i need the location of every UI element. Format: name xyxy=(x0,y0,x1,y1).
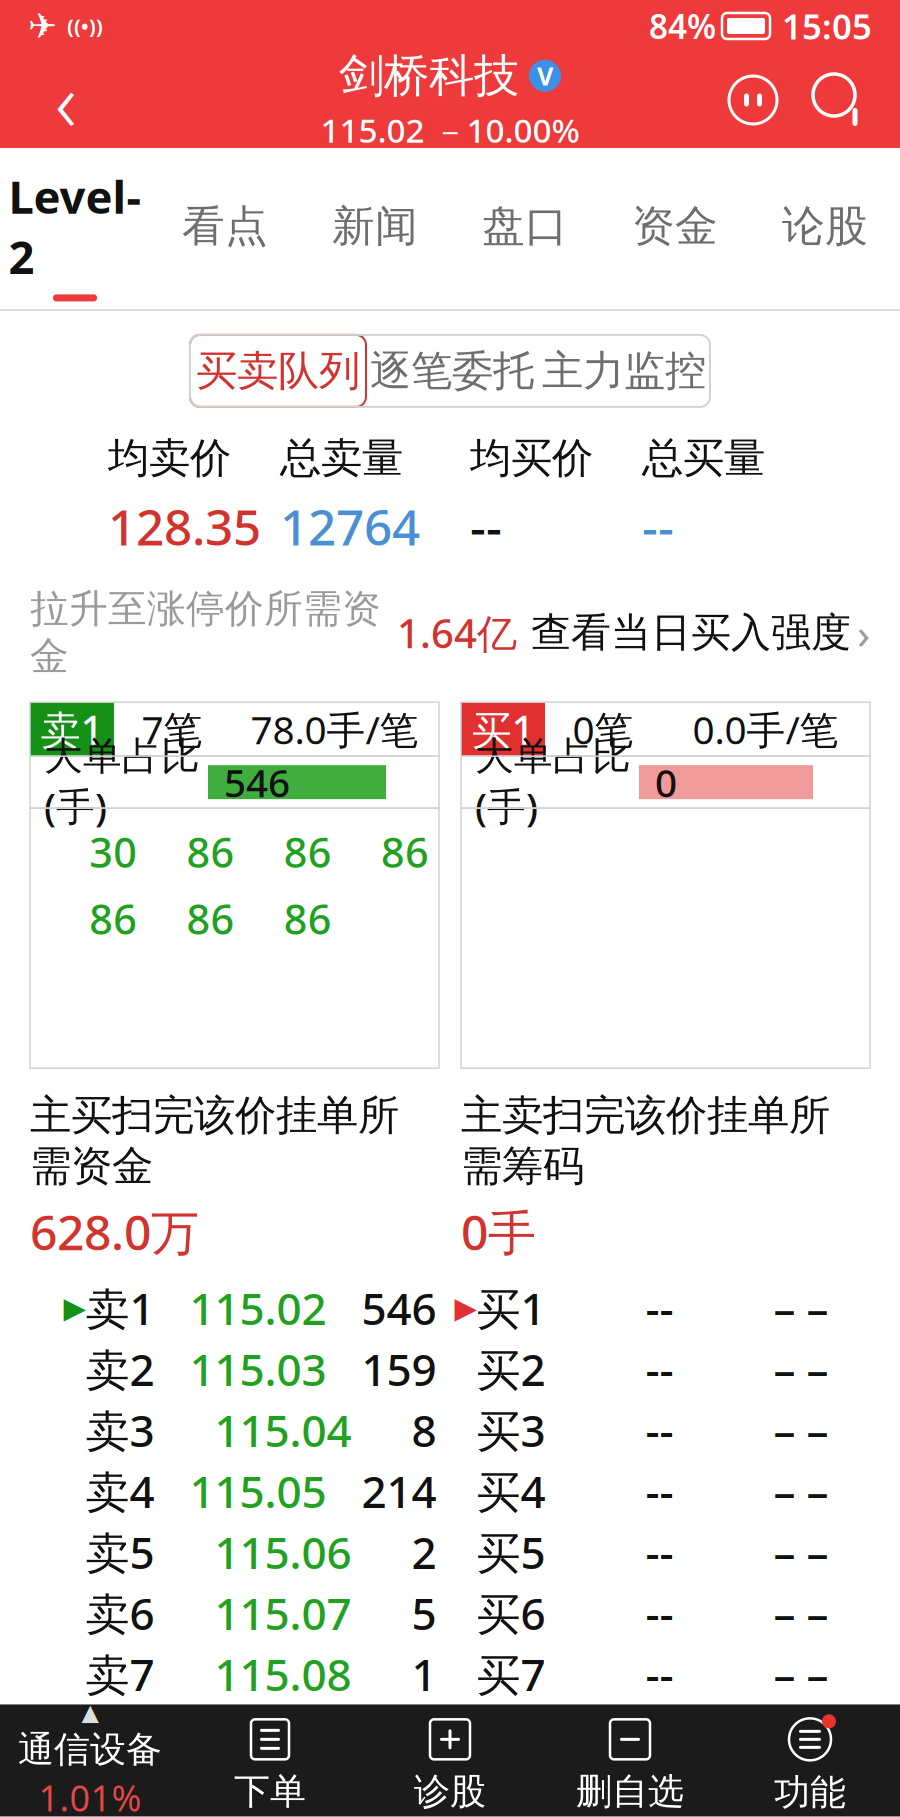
staticText: 7笔 xyxy=(141,703,202,755)
staticText: 86 xyxy=(186,824,234,879)
staticText: 买4 xyxy=(476,1462,545,1520)
staticText: 总卖量 xyxy=(280,433,403,484)
staticText: 0 xyxy=(655,756,677,808)
staticText: 通信设备 xyxy=(18,1727,162,1771)
staticText: -- xyxy=(645,1462,673,1520)
button[interactable]: Back xyxy=(18,57,114,143)
staticText: 查看当日买入强度 xyxy=(531,608,851,657)
staticText: 86 xyxy=(284,891,332,946)
staticText: 诊股 xyxy=(414,1769,486,1813)
staticText: 卖4 xyxy=(85,1462,154,1520)
staticText: 均卖价 xyxy=(108,433,231,484)
staticText: 盘口 xyxy=(482,200,568,252)
staticText: 115.03 xyxy=(189,1340,326,1398)
staticText: -- xyxy=(470,494,502,559)
button[interactable]: 资金 xyxy=(600,182,750,275)
button[interactable]: 诊股 xyxy=(360,1707,540,1813)
staticText: -- xyxy=(645,1584,673,1642)
staticText: 卖2 xyxy=(85,1340,154,1398)
staticText: – – xyxy=(773,1645,828,1703)
staticText: › xyxy=(857,604,870,661)
staticText: 115.02 xyxy=(189,1279,326,1337)
button[interactable]: 逐笔委托 xyxy=(366,335,538,407)
staticText: 均买价 xyxy=(470,433,593,484)
staticText: 115.04 xyxy=(214,1401,351,1459)
staticText: 买1 xyxy=(471,703,534,756)
staticText: 买6 xyxy=(476,1584,545,1642)
staticText: 115.07 xyxy=(214,1584,351,1642)
staticText: 78.0手/笔 xyxy=(250,703,418,755)
staticText: 0.0手/笔 xyxy=(692,703,838,755)
staticText: -- xyxy=(645,1279,673,1337)
button[interactable]: 下单 xyxy=(180,1707,360,1813)
staticText: 卖3 xyxy=(85,1401,154,1459)
staticText: 买2 xyxy=(476,1340,545,1398)
staticText: 买7 xyxy=(476,1645,545,1703)
staticText: 拉升至涨停价所需资金 xyxy=(30,585,381,680)
button[interactable]: 功能 xyxy=(720,1706,900,1814)
staticText: 买5 xyxy=(476,1523,545,1581)
staticText: 逐笔委托 xyxy=(370,345,534,396)
staticText: -- xyxy=(642,494,674,559)
staticText: -- xyxy=(645,1401,673,1459)
staticText: 115.05 xyxy=(189,1462,326,1520)
staticText: – – xyxy=(773,1340,828,1398)
button[interactable]: 论股 xyxy=(750,182,900,275)
staticText: 128.35 xyxy=(108,494,261,559)
button[interactable]: 盘口 xyxy=(450,182,600,275)
button[interactable]: 查看当日买入强度 xyxy=(531,604,870,661)
staticText: – – xyxy=(773,1462,828,1520)
staticText: 8 xyxy=(411,1401,436,1459)
staticText: 剑桥科技 xyxy=(339,48,519,104)
staticText: ▲ xyxy=(81,1700,98,1725)
staticText: – – xyxy=(773,1584,828,1642)
staticText: 0笔 xyxy=(572,703,633,755)
staticText: – – xyxy=(773,1523,828,1581)
staticText: 5 xyxy=(411,1584,436,1642)
button[interactable]: 看点 xyxy=(150,182,300,275)
button[interactable]: Level-2 xyxy=(0,148,150,309)
staticText: 84% xyxy=(649,4,716,48)
staticText: -- xyxy=(645,1523,673,1581)
staticText: 买卖队列 xyxy=(196,345,360,396)
staticText: 30 xyxy=(89,824,137,879)
staticText: 主卖扫完该价挂单所需筹码 xyxy=(461,1090,830,1192)
staticText: ‹ xyxy=(55,45,77,155)
staticText: V xyxy=(537,59,553,93)
staticText: 1.64亿 xyxy=(397,606,517,659)
staticText: – – xyxy=(773,1279,828,1337)
button[interactable]: 主力监控 xyxy=(538,335,710,407)
staticText: -- xyxy=(645,1340,673,1398)
button[interactable]: 买卖队列 xyxy=(190,335,366,407)
staticText: 买1 xyxy=(476,1279,545,1337)
staticText: 删自选 xyxy=(576,1769,684,1813)
staticText: 86 xyxy=(381,824,429,879)
staticText: 115.06 xyxy=(214,1523,351,1581)
staticText: 2 xyxy=(411,1523,436,1581)
staticText: 新闻 xyxy=(332,200,418,252)
staticText: ▶ xyxy=(454,1291,477,1325)
staticText: 总买量 xyxy=(642,433,765,484)
button[interactable]: Weibo xyxy=(710,57,796,143)
button[interactable]: 删自选 xyxy=(540,1707,720,1813)
staticText: Level-2 xyxy=(8,166,141,286)
staticText: – – xyxy=(773,1401,828,1459)
staticText: 卖5 xyxy=(85,1523,154,1581)
staticText: 115.02 －10.00% xyxy=(320,108,579,152)
staticText: 论股 xyxy=(782,200,868,252)
staticText: 115.08 xyxy=(214,1645,351,1703)
staticText: 546 xyxy=(361,1279,436,1337)
button[interactable]: ▲ xyxy=(0,1700,180,1817)
button[interactable]: Search xyxy=(796,57,882,143)
staticText: 卖6 xyxy=(85,1584,154,1642)
button[interactable]: 新闻 xyxy=(300,182,450,275)
